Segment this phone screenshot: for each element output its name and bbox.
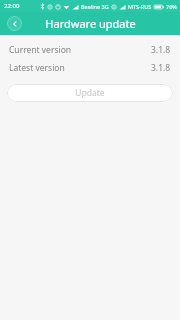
staticText: Current version xyxy=(9,44,72,56)
button[interactable]: Update xyxy=(7,84,173,102)
staticText: 3.1.8 xyxy=(151,44,171,56)
button[interactable]: Latest version xyxy=(0,59,180,77)
staticText: 3.1.8 xyxy=(151,62,171,74)
staticText: 76% xyxy=(166,3,177,10)
staticText: Beeline 3G xyxy=(81,3,109,10)
staticText: MTS-RUS xyxy=(128,3,152,10)
staticText: 22:00 xyxy=(4,2,20,10)
button[interactable]: Back xyxy=(7,16,22,31)
staticText: Update xyxy=(75,87,105,99)
staticText: Hardware update xyxy=(45,16,136,31)
staticText: Latest version xyxy=(9,62,65,74)
button[interactable]: Current version xyxy=(0,41,180,59)
